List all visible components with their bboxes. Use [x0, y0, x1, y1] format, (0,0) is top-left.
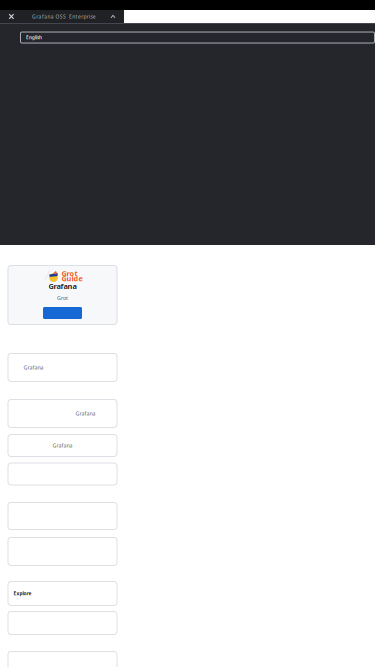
button[interactable]: English — [20, 31, 375, 43]
button[interactable]: Close — [0, 10, 21, 23]
button[interactable]: Grafana OSS — [30, 10, 68, 23]
staticText: Grafana — [48, 281, 76, 291]
staticText: Explore — [13, 590, 31, 597]
staticText: Grot — [61, 268, 77, 278]
staticText: Grafana — [23, 364, 43, 371]
staticText: Grafana OSS — [32, 13, 66, 20]
button[interactable]: Collapse — [105, 10, 121, 23]
staticText: Enterprise — [69, 13, 96, 20]
staticText: Grot — [57, 294, 68, 302]
staticText: Grafana — [52, 442, 72, 449]
staticText: English — [26, 34, 42, 41]
staticText: Grafana — [75, 410, 95, 417]
staticText: Guide — [61, 273, 82, 283]
button[interactable] — [43, 307, 82, 319]
button[interactable]: Enterprise — [67, 10, 98, 23]
